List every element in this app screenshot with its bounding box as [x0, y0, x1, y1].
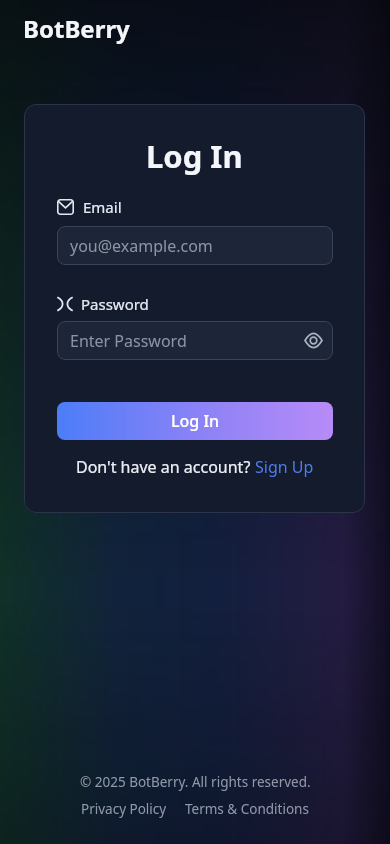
- button[interactable]: Enter Password: [57, 321, 333, 360]
- button[interactable]: you@example.com: [57, 226, 333, 265]
- staticText: Don't have an account?: [76, 456, 255, 478]
- button[interactable]: Sign Up: [255, 456, 314, 478]
- button[interactable]: Privacy Policy: [81, 800, 167, 818]
- button[interactable]: Log In: [57, 402, 333, 440]
- staticText: Enter Password: [70, 330, 187, 352]
- staticText: Log In: [146, 135, 243, 177]
- staticText: Password: [81, 294, 149, 314]
- staticText: Log In: [171, 410, 220, 432]
- button[interactable]: Terms & Conditions: [185, 800, 309, 818]
- staticText: Email: [83, 197, 122, 217]
- staticText: you@example.com: [70, 235, 213, 257]
- staticText: BotBerry: [23, 12, 130, 45]
- staticText: © 2025 BotBerry. All rights reserved.: [80, 773, 311, 791]
